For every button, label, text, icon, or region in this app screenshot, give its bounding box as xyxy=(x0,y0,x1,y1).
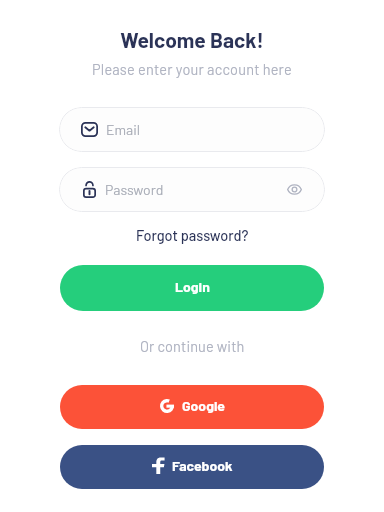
button[interactable]: Google xyxy=(60,385,324,429)
staticText: Please enter your account here xyxy=(92,60,292,77)
button[interactable]: Email xyxy=(59,107,325,152)
staticText: Login xyxy=(175,278,210,295)
button[interactable]: Facebook xyxy=(60,445,324,489)
staticText: Welcome Back! xyxy=(120,27,264,52)
staticText: Forgot password? xyxy=(136,226,249,243)
other: Show password xyxy=(287,183,302,196)
button[interactable]: Forgot password? xyxy=(130,223,255,246)
staticText: Password xyxy=(105,181,164,198)
staticText: Or continue with xyxy=(140,337,245,354)
button[interactable]: Login xyxy=(60,265,324,311)
staticText: Facebook xyxy=(172,457,233,474)
button[interactable]: Password xyxy=(59,167,325,212)
staticText: Email xyxy=(106,121,140,138)
staticText: Google xyxy=(182,397,225,414)
